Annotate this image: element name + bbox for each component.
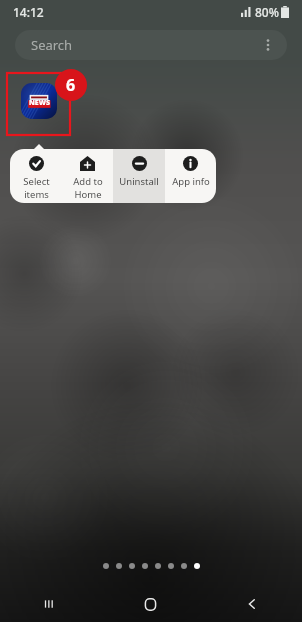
button[interactable]: Add to	[62, 149, 113, 203]
staticText: Home	[74, 188, 102, 201]
staticText: NEWS	[29, 98, 50, 108]
button[interactable]: Select	[10, 149, 62, 203]
button[interactable]: Search	[15, 30, 287, 60]
staticText: 14:12	[13, 4, 44, 20]
staticText: Select	[23, 175, 50, 188]
staticText: 6	[66, 74, 76, 96]
button[interactable]: Back	[201, 586, 302, 622]
button[interactable]: Breaking News, selected	[7, 73, 70, 135]
button[interactable]: NEWS	[21, 83, 57, 119]
button[interactable]: Uninstall	[113, 149, 165, 203]
staticText: App info	[172, 175, 210, 188]
staticText: items	[24, 188, 49, 201]
staticText: Search	[31, 36, 73, 54]
staticText: Add to	[73, 175, 103, 188]
staticText: 80%	[255, 4, 279, 20]
button[interactable]: Home	[100, 586, 201, 622]
button[interactable]: Recent apps	[0, 586, 100, 622]
button[interactable]: App info	[165, 149, 216, 203]
button[interactable]: More options	[257, 34, 279, 56]
staticText: Uninstall	[119, 175, 159, 188]
